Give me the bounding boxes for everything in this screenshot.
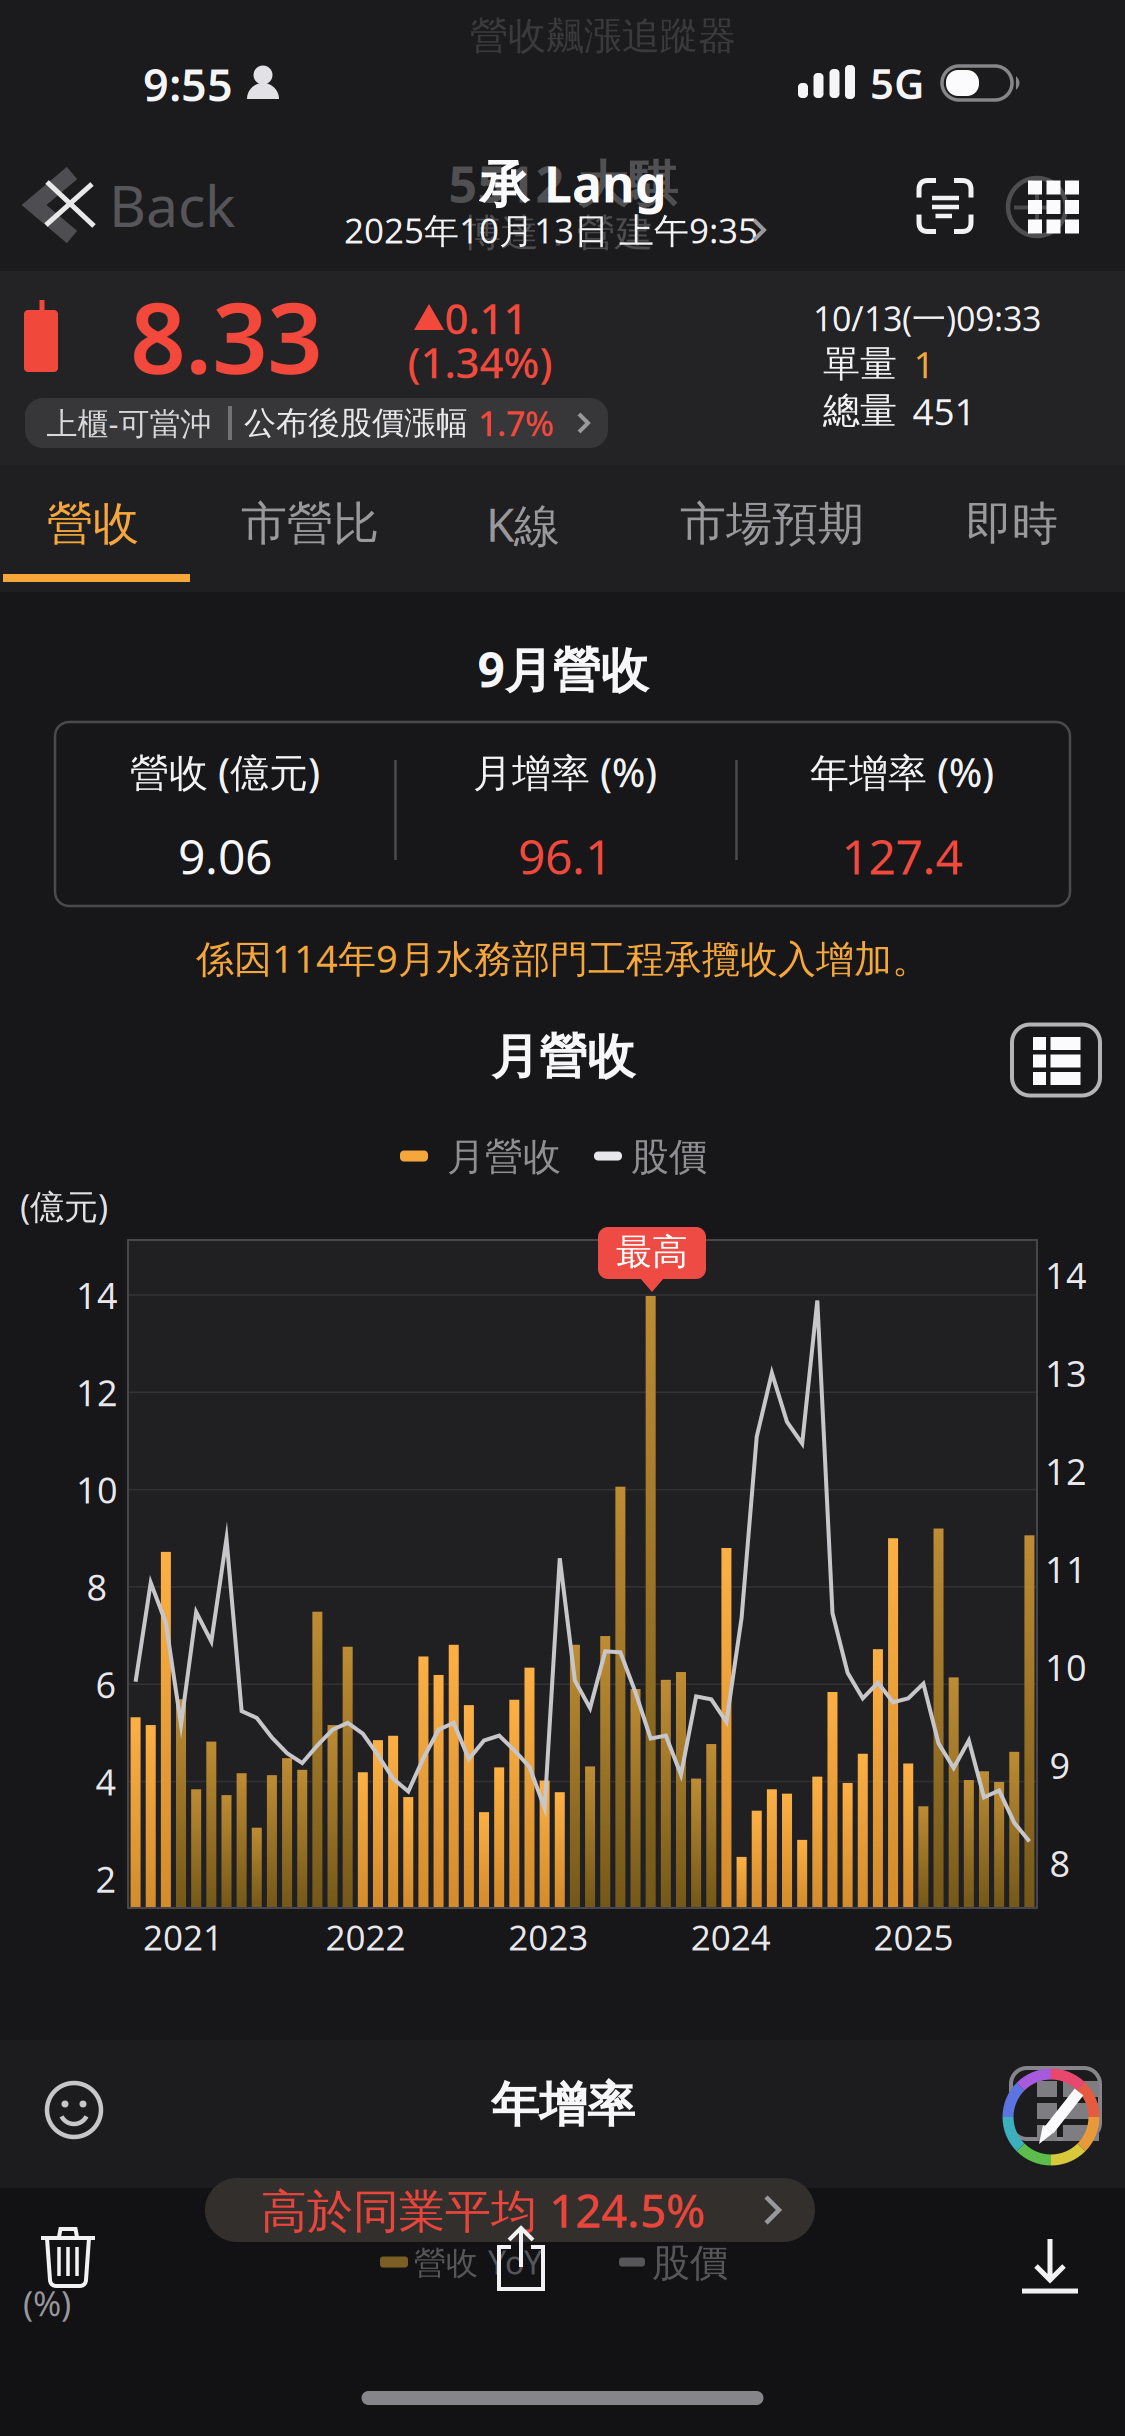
staticText: 月增率 (%) [473, 745, 657, 798]
button[interactable]: Edit chart [996, 2059, 1108, 2169]
staticText: 5512 大騏 [448, 149, 677, 217]
staticText: 10 [76, 1465, 118, 1514]
staticText: 營收 YoY [414, 2240, 542, 2284]
staticText: 11 [1045, 1544, 1087, 1593]
staticText: 13 [1045, 1348, 1087, 1397]
button[interactable]: Delete [41, 2226, 95, 2288]
staticText: 8.33 [130, 270, 322, 402]
button[interactable]: Apps [1016, 177, 1086, 237]
button[interactable]: Download [1022, 2239, 1078, 2293]
button[interactable]: Mood [42, 2078, 106, 2142]
button[interactable]: 上櫃-可當沖 [25, 398, 608, 448]
staticText: 公布後股價漲幅 [244, 403, 468, 443]
staticText: 12 [1045, 1446, 1087, 1495]
staticText: 2023 [508, 1913, 588, 1961]
staticText: 係因114年9月水務部門工程承攬收入增加。 [196, 932, 930, 984]
staticText: 營收 (億元) [130, 745, 320, 798]
button[interactable]: K線 [445, 484, 601, 564]
staticText: 5G [870, 54, 924, 112]
staticText: 6 [95, 1660, 116, 1709]
staticText: 上櫃-可當沖 [46, 402, 211, 444]
staticText: 月營收 [491, 1027, 635, 1087]
staticText: Back [109, 166, 235, 244]
staticText: 12 [76, 1368, 118, 1417]
staticText: 年增率 [491, 2075, 635, 2135]
staticText: 營收飆漲追蹤器 [470, 12, 736, 60]
staticText: 2025年10月13日 上午9:35 [344, 206, 758, 254]
staticText: 總量 [823, 388, 897, 434]
button[interactable]: Scan [919, 180, 971, 231]
button[interactable]: 2025年10月13日 上午9:35 [360, 208, 790, 252]
button[interactable]: 高於同業平均 124.5% [205, 2178, 815, 2242]
button[interactable]: 市場預期 [646, 484, 898, 564]
staticText: (億元) [20, 1183, 108, 1229]
staticText: 2021 [143, 1913, 223, 1961]
staticText: 1.7% [478, 400, 554, 446]
staticText: 承 Lang [479, 149, 667, 217]
staticText: 9:55 [143, 53, 233, 115]
staticText: 14 [1045, 1250, 1087, 1299]
staticText: 博達．營建 [463, 209, 653, 257]
staticText: (%) [23, 2280, 71, 2326]
staticText: 2022 [326, 1913, 406, 1961]
button[interactable]: Back [14, 168, 249, 242]
staticText: 4 [95, 1757, 116, 1806]
staticText: 股價 [631, 1133, 707, 1181]
staticText: 10/13(一)09:33 [813, 295, 1041, 341]
staticText: 9.06 [178, 823, 272, 889]
staticText: 127.4 [841, 823, 962, 889]
staticText: 市場預期 [680, 495, 864, 553]
staticText: 1 [913, 339, 934, 389]
staticText: 年增率 (%) [810, 745, 994, 798]
staticText: 2025 [873, 1913, 953, 1961]
staticText: 市營比 [241, 495, 379, 553]
staticText: 8 [86, 1562, 107, 1611]
staticText: 8 [1049, 1838, 1070, 1887]
staticText: 9 [1049, 1740, 1070, 1789]
button[interactable]: 營收 [15, 484, 171, 564]
staticText: 0.11 [444, 289, 527, 347]
staticText: 營收 [47, 495, 139, 553]
staticText: 月營收 [447, 1133, 561, 1181]
staticText: (1.34%) [407, 333, 552, 391]
staticText: 451 [912, 386, 975, 436]
staticText: 10 [1045, 1642, 1087, 1691]
button[interactable]: Share [497, 2227, 545, 2291]
staticText: 單量 [823, 341, 897, 387]
staticText: 2024 [691, 1913, 771, 1961]
staticText: 股價 [652, 2239, 728, 2287]
staticText: 14 [76, 1270, 118, 1319]
staticText: 最高 [616, 1229, 688, 1275]
staticText: 96.1 [518, 823, 612, 889]
staticText: K線 [486, 493, 560, 555]
button[interactable]: 即時 [934, 484, 1090, 564]
staticText: 高於同業平均 124.5% [261, 2179, 705, 2241]
button[interactable]: 市營比 [208, 484, 412, 564]
button[interactable]: Table view [1012, 1024, 1100, 1095]
staticText: 9月營收 [477, 636, 648, 702]
staticText: 2 [95, 1854, 116, 1903]
staticText: 即時 [966, 495, 1058, 553]
